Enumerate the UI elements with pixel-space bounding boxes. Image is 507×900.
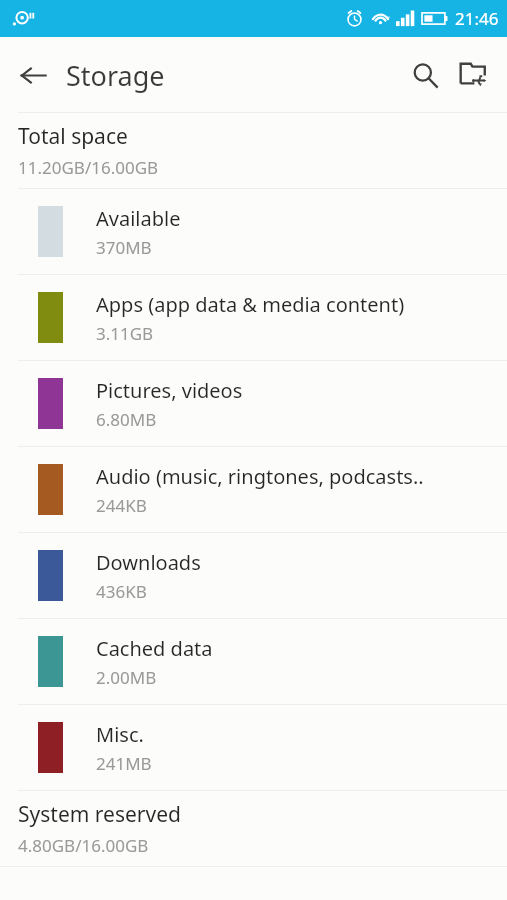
staticText: 3.11GB <box>96 322 154 345</box>
staticText: Apps (app data & media content) <box>96 291 405 318</box>
button[interactable]: Cached data <box>0 619 507 704</box>
staticText: 6.80MB <box>96 408 157 431</box>
staticText: 241MB <box>96 752 152 775</box>
button[interactable]: Misc. <box>0 705 507 790</box>
staticText: 4.80GB/16.00GB <box>18 834 149 857</box>
staticText: 436KB <box>96 580 147 603</box>
button[interactable]: Back <box>10 52 56 98</box>
staticText: Available <box>96 205 181 232</box>
staticText: 370MB <box>96 236 152 259</box>
staticText: Audio (music, ringtones, podcasts.. <box>96 463 424 490</box>
button[interactable]: Available <box>0 189 507 274</box>
button[interactable]: Search <box>401 51 449 99</box>
staticText: 2.00MB <box>96 666 157 689</box>
staticText: Total space <box>18 122 128 151</box>
button[interactable]: Downloads <box>0 533 507 618</box>
staticText: Pictures, videos <box>96 377 243 404</box>
button[interactable]: Audio (music, ringtones, podcasts.. <box>0 447 507 532</box>
staticText: System reserved <box>18 800 181 829</box>
staticText: 11.20GB/16.00GB <box>18 156 159 179</box>
staticText: 244KB <box>96 494 147 517</box>
staticText: Cached data <box>96 635 213 662</box>
button[interactable]: Apps (app data & media content) <box>0 275 507 360</box>
staticText: Storage <box>66 57 165 94</box>
staticText: Misc. <box>96 721 144 748</box>
staticText: 21:46 <box>455 7 499 30</box>
staticText: Downloads <box>96 549 201 576</box>
button[interactable]: Pictures, videos <box>0 361 507 446</box>
button[interactable]: Open file manager <box>449 51 497 99</box>
